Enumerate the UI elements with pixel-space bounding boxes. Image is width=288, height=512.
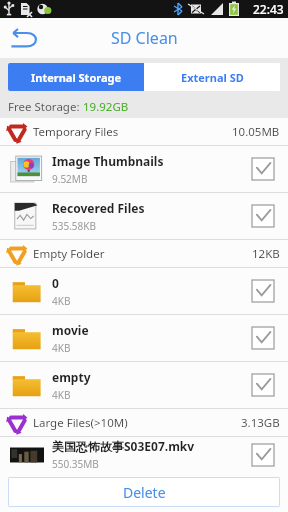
- button[interactable]: Select Image Thumbnails: [246, 152, 280, 186]
- staticText: Recovered Files: [52, 200, 145, 216]
- staticText: SD Clean: [111, 27, 178, 49]
- button[interactable]: Temporary Files: [0, 118, 288, 145]
- staticText: Delete: [123, 483, 166, 502]
- button[interactable]: Empty Folder: [0, 240, 288, 267]
- staticText: 4KB: [52, 388, 71, 402]
- button[interactable]: movie: [0, 315, 288, 361]
- staticText: 550.35MB: [52, 457, 99, 471]
- staticText: empty: [52, 369, 91, 385]
- staticText: 0: [52, 275, 59, 291]
- staticText: Temporary Files: [33, 124, 119, 140]
- staticText: Internal Storage: [31, 70, 122, 85]
- staticText: Image Thumbnails: [52, 153, 164, 169]
- staticText: 3.13GB: [241, 415, 280, 431]
- button[interactable]: Select 美国恐怖故事S03E07.mkv: [246, 438, 280, 472]
- button[interactable]: Back: [0, 18, 48, 58]
- staticText: 美国恐怖故事S03E07.mkv: [52, 438, 195, 454]
- staticText: 10.05MB: [232, 124, 280, 140]
- staticText: 19.92GB: [83, 99, 129, 115]
- staticText: 12KB: [252, 246, 280, 262]
- button[interactable]: Image Thumbnails: [0, 146, 288, 192]
- button[interactable]: Select Recovered Files: [246, 199, 280, 233]
- staticText: Large Files(>10M): [33, 415, 128, 431]
- button[interactable]: External SD: [144, 63, 280, 91]
- button[interactable]: 0: [0, 268, 288, 314]
- button[interactable]: Select 0: [246, 274, 280, 308]
- button[interactable]: Select empty: [246, 368, 280, 402]
- staticText: Free Storage:: [8, 99, 83, 115]
- staticText: 22:43: [253, 1, 284, 17]
- staticText: 535.58KB: [52, 219, 96, 233]
- staticText: External SD: [181, 70, 244, 85]
- staticText: 9.52MB: [52, 172, 88, 186]
- button[interactable]: 美国恐怖故事S03E07.mkv: [0, 437, 288, 472]
- staticText: 4KB: [52, 341, 71, 355]
- staticText: movie: [52, 322, 89, 338]
- button[interactable]: Select movie: [246, 321, 280, 355]
- staticText: 4KB: [52, 294, 71, 308]
- button[interactable]: Internal Storage: [8, 63, 144, 91]
- staticText: Empty Folder: [33, 246, 105, 262]
- button[interactable]: Delete: [8, 477, 280, 507]
- button[interactable]: empty: [0, 362, 288, 408]
- button[interactable]: Recovered Files: [0, 193, 288, 239]
- button[interactable]: Large Files(>10M): [0, 409, 288, 436]
